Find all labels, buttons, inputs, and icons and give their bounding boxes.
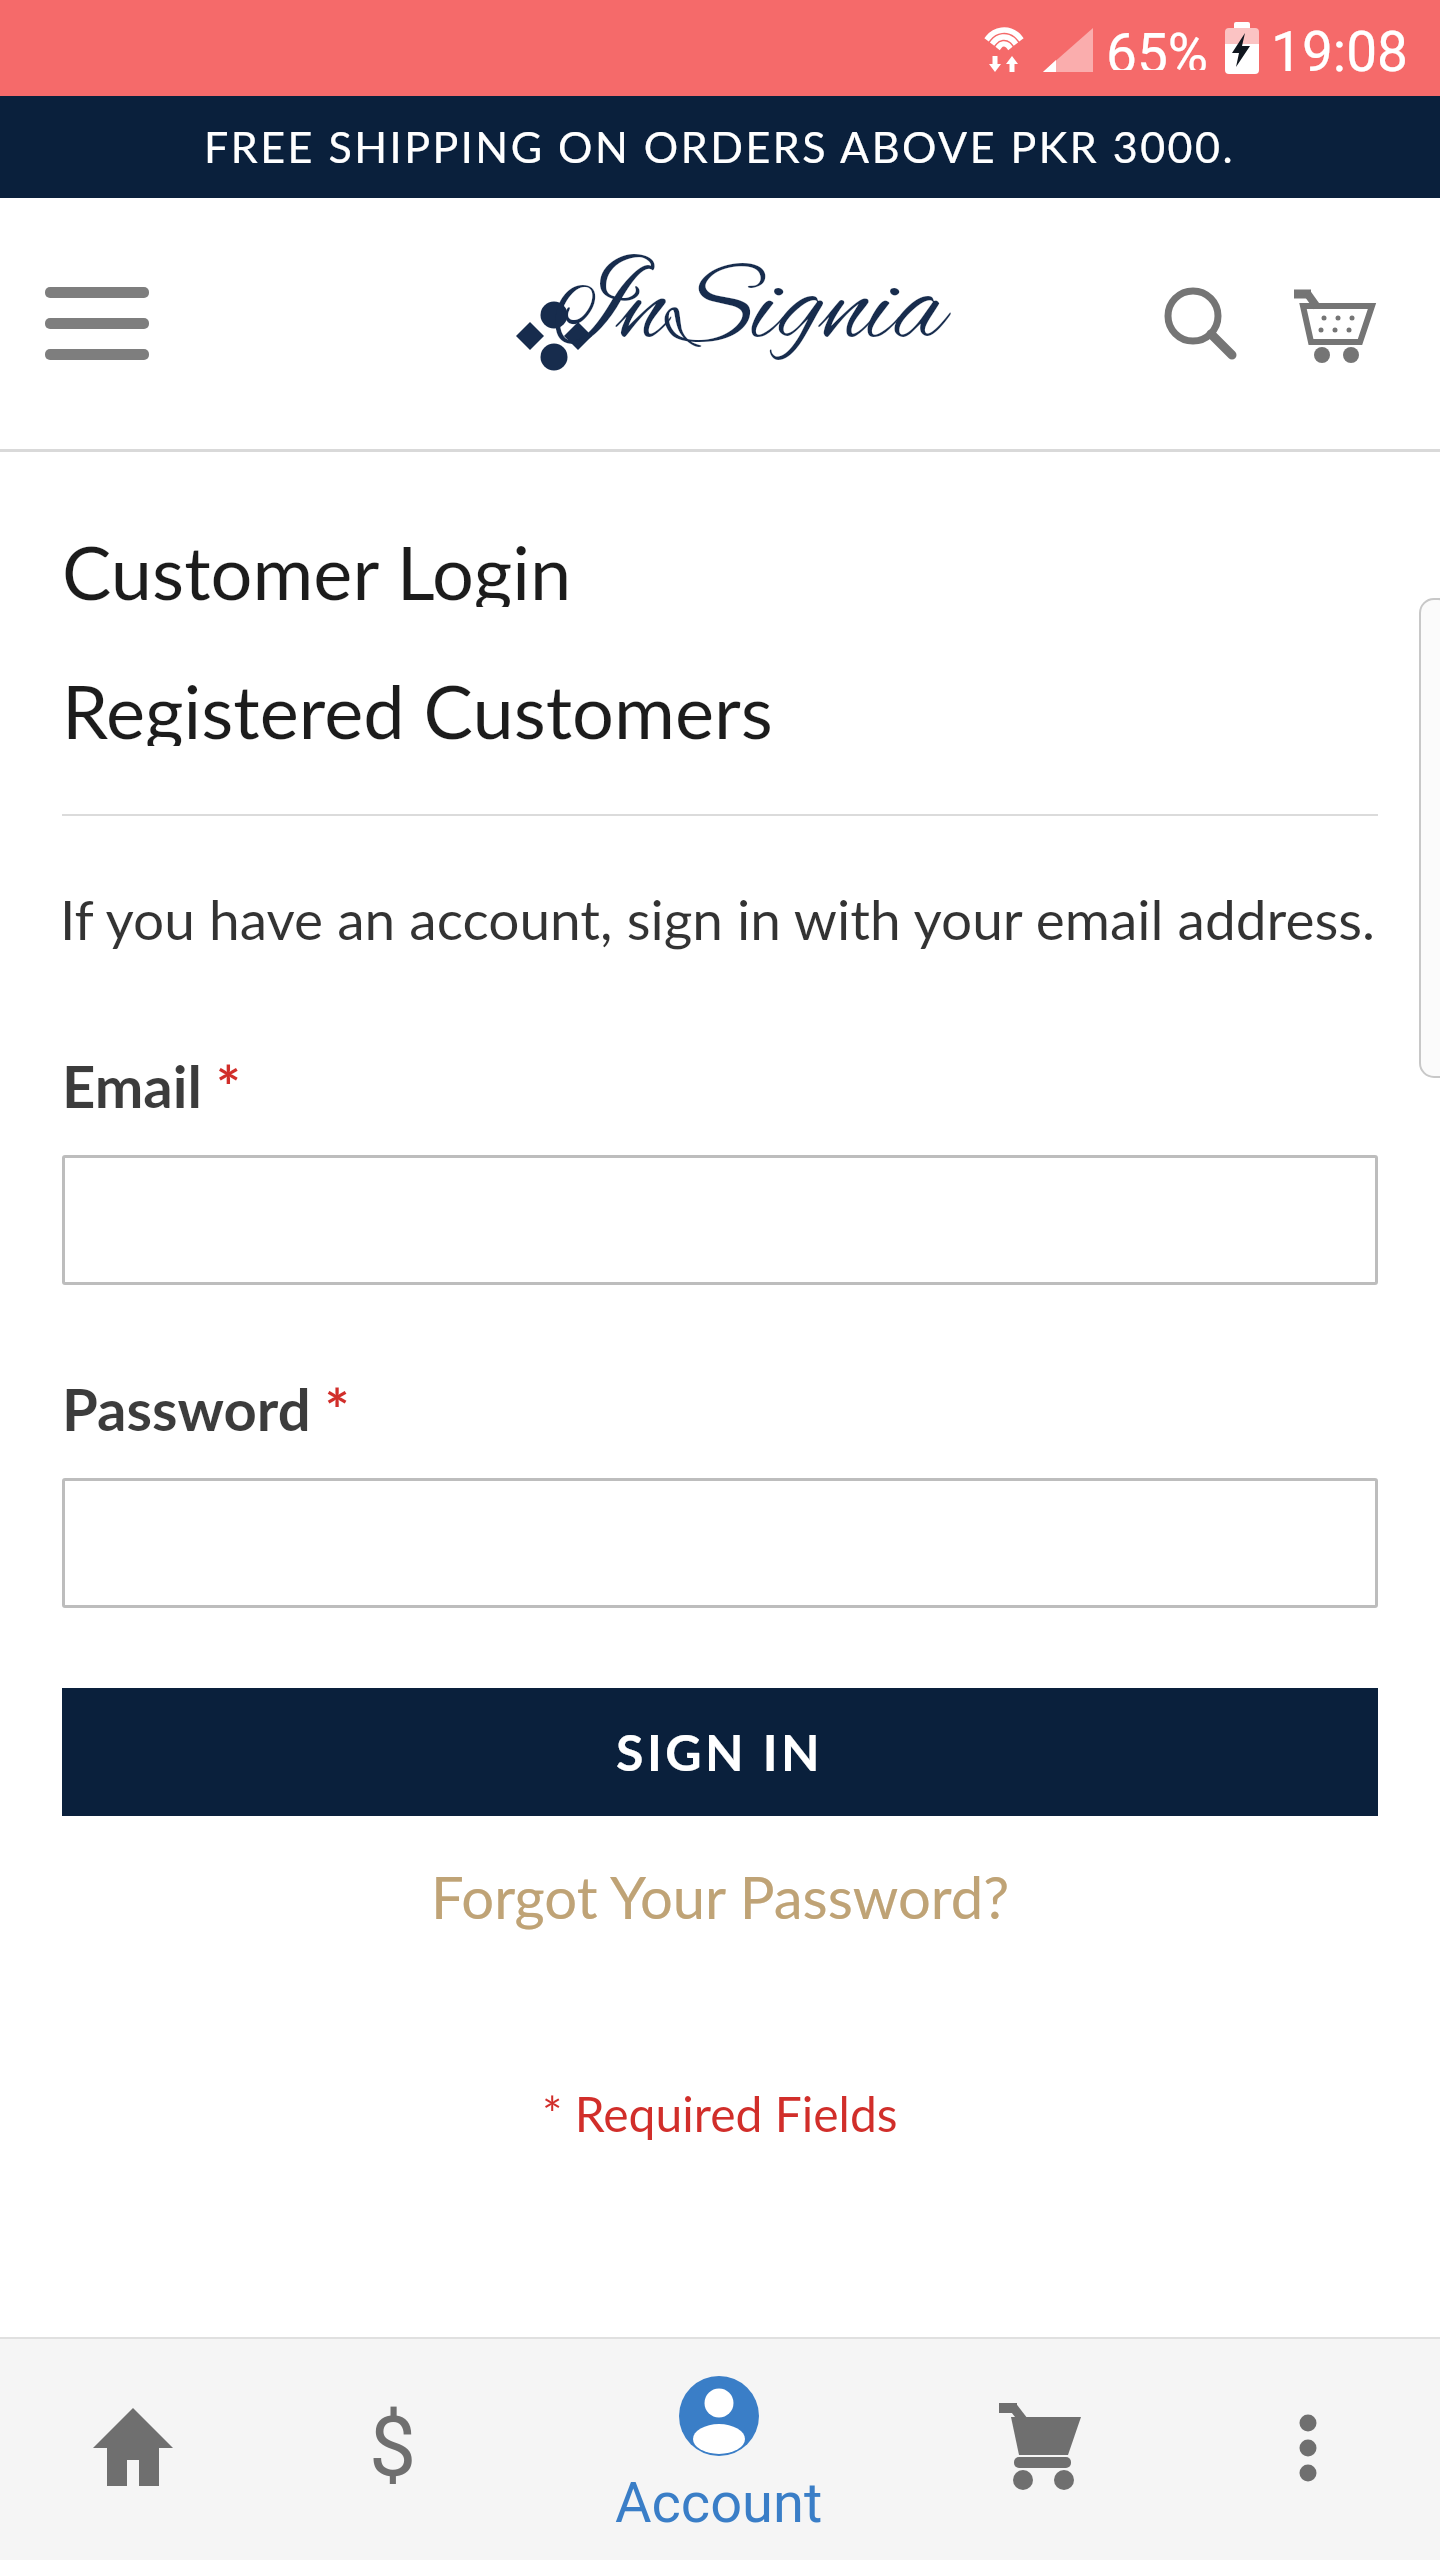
staticText: Password * [62, 1374, 350, 1436]
button[interactable] [45, 280, 149, 365]
staticText: Email * [62, 1051, 241, 1113]
button[interactable] [0, 2337, 288, 2560]
staticText: SIGN IN [616, 1722, 824, 1782]
staticText: Customer Login [62, 527, 572, 607]
staticText: InSignia [553, 240, 944, 385]
staticText: $ [369, 2398, 417, 2496]
button[interactable] [1290, 282, 1378, 370]
button[interactable] [1152, 2337, 1440, 2560]
staticText: FREE SHIPPING ON ORDERS ABOVE PKR 3000. [204, 121, 1236, 173]
button[interactable]: $ [288, 2337, 576, 2560]
button[interactable] [864, 2337, 1152, 2560]
staticText: Account [615, 2470, 823, 2534]
button[interactable]: Forgot Your Password? [360, 1857, 1080, 1937]
staticText: 65% [1106, 22, 1209, 70]
staticText: Forgot Your Password? [431, 1862, 1010, 1932]
button[interactable]: InSignia [505, 228, 945, 423]
staticText: * Required Fields [542, 2085, 898, 2143]
button[interactable]: Account [576, 2337, 864, 2560]
button[interactable] [62, 1478, 1378, 1608]
staticText: Registered Customers [62, 666, 773, 746]
button[interactable] [62, 1155, 1378, 1285]
staticText: If you have an account, sign in with you… [60, 886, 1376, 952]
staticText: 19:08 [1271, 20, 1408, 72]
button[interactable]: SIGN IN [62, 1688, 1378, 1816]
button[interactable] [1160, 283, 1242, 365]
